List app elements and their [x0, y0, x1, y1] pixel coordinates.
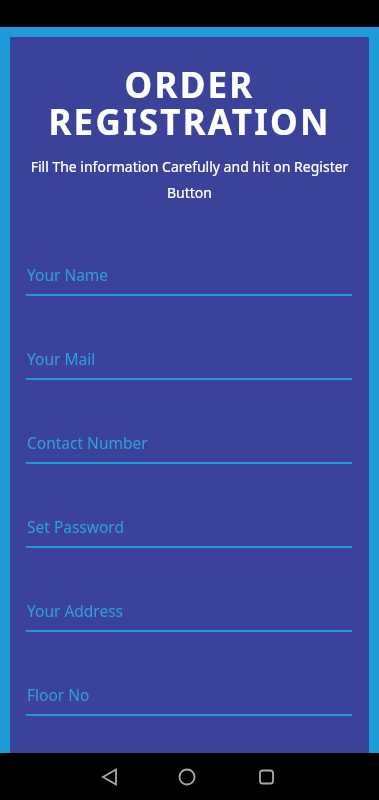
staticText: Your Address: [27, 600, 124, 621]
staticText: Fill The information Carefully and hit o…: [0, 157, 379, 203]
button[interactable]: [167, 758, 207, 796]
button[interactable]: [90, 758, 130, 796]
button[interactable]: Your Mail: [26, 348, 352, 380]
staticText: Your Name: [27, 264, 109, 285]
button[interactable]: Your Name: [26, 264, 352, 296]
staticText: ORDER REGISTRATION: [0, 61, 379, 145]
staticText: Contact Number: [27, 432, 148, 453]
staticText: Your Mail: [27, 348, 96, 369]
staticText: Set Password: [27, 516, 124, 537]
button[interactable]: Set Password: [26, 516, 352, 548]
button[interactable]: [246, 758, 286, 796]
button[interactable]: Floor No: [26, 684, 352, 716]
staticText: Floor No: [27, 684, 90, 705]
button[interactable]: Contact Number: [26, 432, 352, 464]
button[interactable]: Your Address: [26, 600, 352, 632]
